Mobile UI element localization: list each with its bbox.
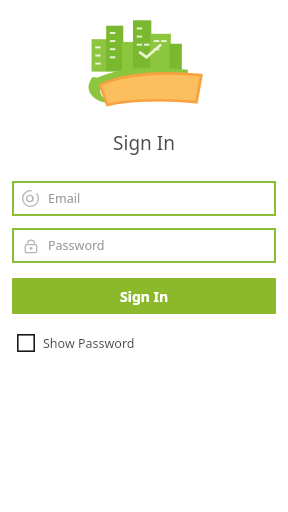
button[interactable]: Email [12,181,276,216]
button[interactable]: Sign In [12,278,276,314]
staticText: Show Password [43,335,135,352]
staticText: Sign In [120,287,169,306]
staticText: Email [48,190,81,207]
button[interactable]: Show Password [12,331,276,355]
staticText: Sign In [113,130,175,156]
button[interactable]: Password [12,228,276,263]
staticText: Password [48,237,105,254]
